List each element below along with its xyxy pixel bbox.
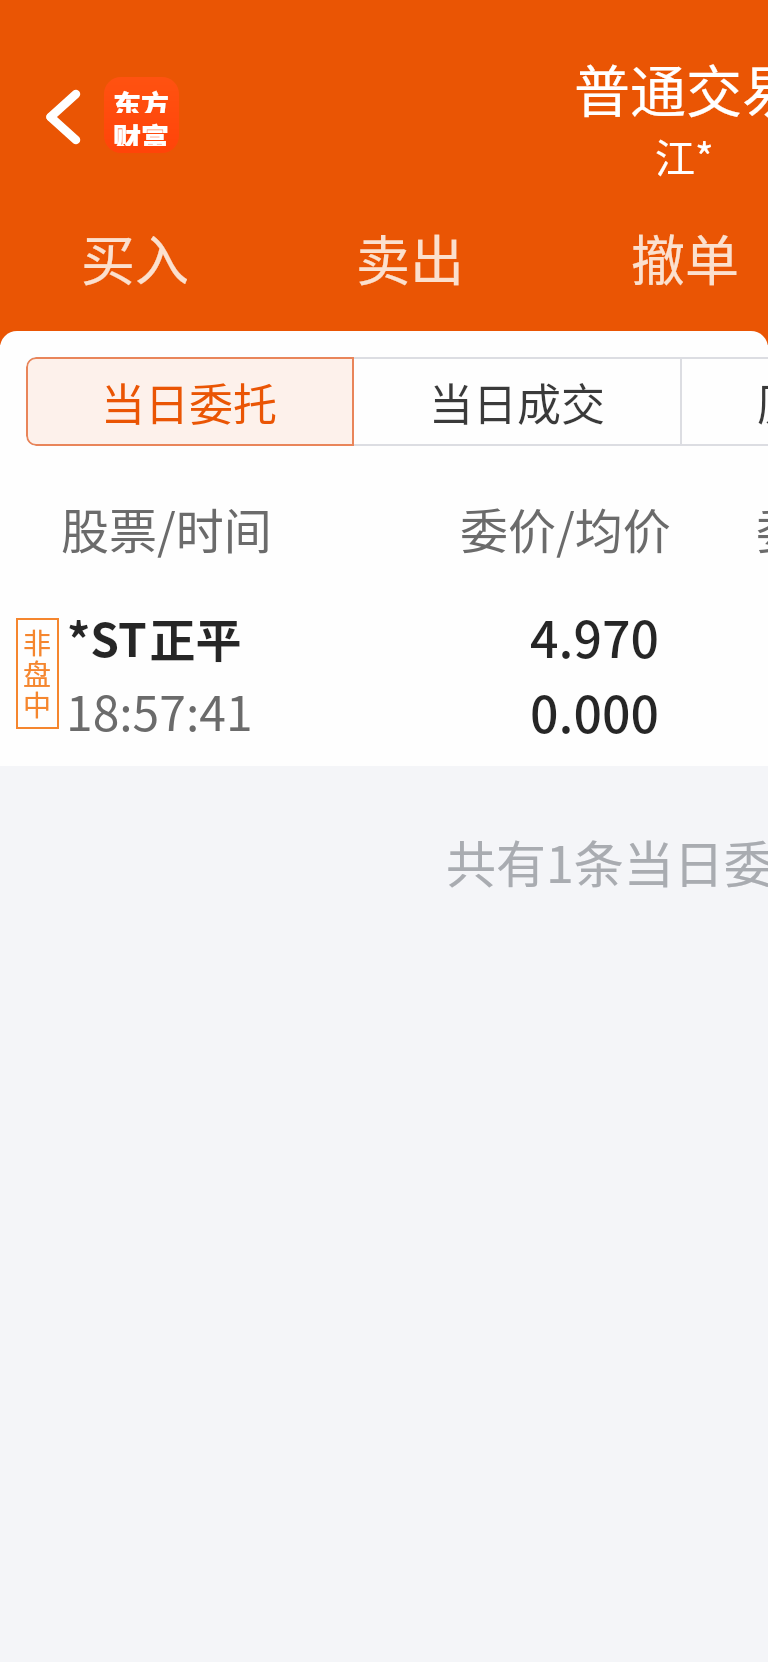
staticText: 当日委托 bbox=[101, 370, 277, 434]
staticText: 中 bbox=[23, 684, 52, 725]
button[interactable]: Back bbox=[22, 84, 78, 150]
button[interactable]: 当日成交 bbox=[354, 359, 680, 444]
staticText: 委量/成交量 bbox=[756, 493, 768, 563]
staticText: 股票/时间 bbox=[61, 493, 272, 563]
staticText: 委价/均价 bbox=[460, 493, 671, 563]
staticText: 卖出 bbox=[356, 218, 464, 296]
button[interactable]: 历史委托 bbox=[682, 359, 768, 444]
button[interactable]: 当日委托 bbox=[26, 359, 352, 444]
staticText: 盘 bbox=[23, 653, 52, 694]
staticText: 撤单 bbox=[631, 218, 739, 296]
staticText: 非 bbox=[23, 622, 52, 663]
button[interactable]: 买入 bbox=[65, 212, 205, 302]
staticText: 买入 bbox=[81, 218, 189, 296]
button[interactable]: 撤单 bbox=[615, 212, 755, 302]
staticText: 普通交易 bbox=[574, 47, 768, 128]
button[interactable]: 卖出 bbox=[340, 212, 480, 302]
staticText: 东方 bbox=[113, 84, 170, 113]
staticText: 江* bbox=[655, 127, 714, 185]
staticText: *ST 正平 bbox=[67, 604, 242, 671]
staticText: 当日成交 bbox=[429, 370, 605, 434]
staticText: 18:57:41 bbox=[66, 675, 253, 745]
staticText: 财富 bbox=[113, 117, 170, 146]
staticText: 4.970 bbox=[530, 600, 659, 672]
button[interactable]: 非 bbox=[0, 606, 768, 765]
staticText: 历史委托 bbox=[757, 370, 768, 434]
staticText: 共有1条当日委托 bbox=[446, 825, 768, 897]
button[interactable]: East Money home bbox=[104, 77, 179, 153]
staticText: 0.000 bbox=[530, 675, 659, 747]
